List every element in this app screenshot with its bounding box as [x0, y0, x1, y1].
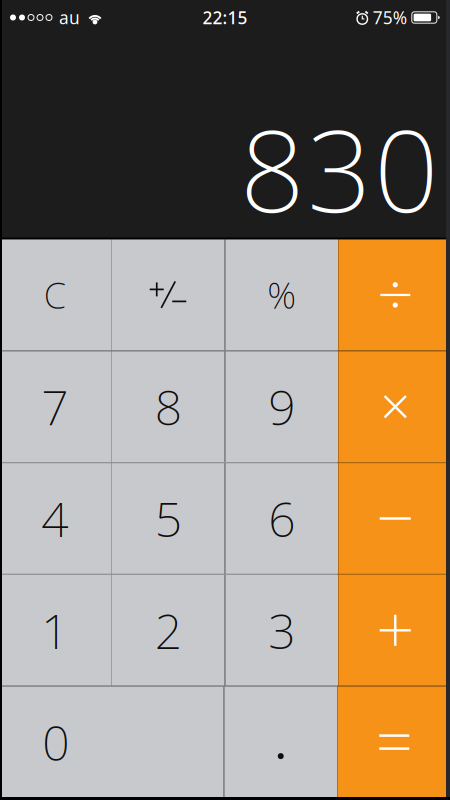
staticText: 22:15	[202, 6, 247, 29]
button[interactable]: 7	[0, 351, 111, 462]
button[interactable]: Equals	[338, 687, 450, 797]
staticText: 75%	[373, 6, 407, 29]
staticText: C	[44, 271, 66, 319]
staticText: 830	[240, 93, 439, 243]
button[interactable]: Add	[339, 575, 450, 686]
staticText: %	[267, 271, 296, 319]
staticText: 9	[268, 375, 295, 438]
staticText: 8	[155, 375, 182, 438]
staticText: 7	[41, 375, 68, 438]
staticText: au	[59, 6, 80, 29]
staticText: 4	[41, 487, 68, 550]
staticText: 2	[155, 598, 182, 662]
button[interactable]: Percent	[225, 239, 338, 350]
button[interactable]: 2	[112, 575, 224, 686]
button[interactable]: 5	[112, 463, 224, 574]
staticText: 5	[155, 487, 182, 550]
staticText: 1	[41, 598, 68, 662]
button[interactable]: 6	[225, 463, 338, 574]
button[interactable]: 9	[225, 351, 338, 462]
staticText: 6	[268, 487, 295, 550]
button[interactable]: Decimal point	[224, 687, 337, 797]
button[interactable]: 4	[0, 463, 111, 574]
button[interactable]: Subtract	[339, 463, 450, 574]
button[interactable]: Multiply	[339, 351, 450, 462]
button[interactable]: 1	[0, 575, 111, 686]
button[interactable]: Divide	[339, 239, 450, 350]
staticText: 0	[42, 710, 69, 774]
button[interactable]: C	[0, 239, 111, 350]
staticText: 3	[268, 598, 295, 662]
button[interactable]: 8	[112, 351, 224, 462]
button[interactable]: Plus Minus	[112, 239, 224, 350]
button[interactable]: 0	[0, 687, 223, 797]
button[interactable]: 3	[225, 575, 338, 686]
